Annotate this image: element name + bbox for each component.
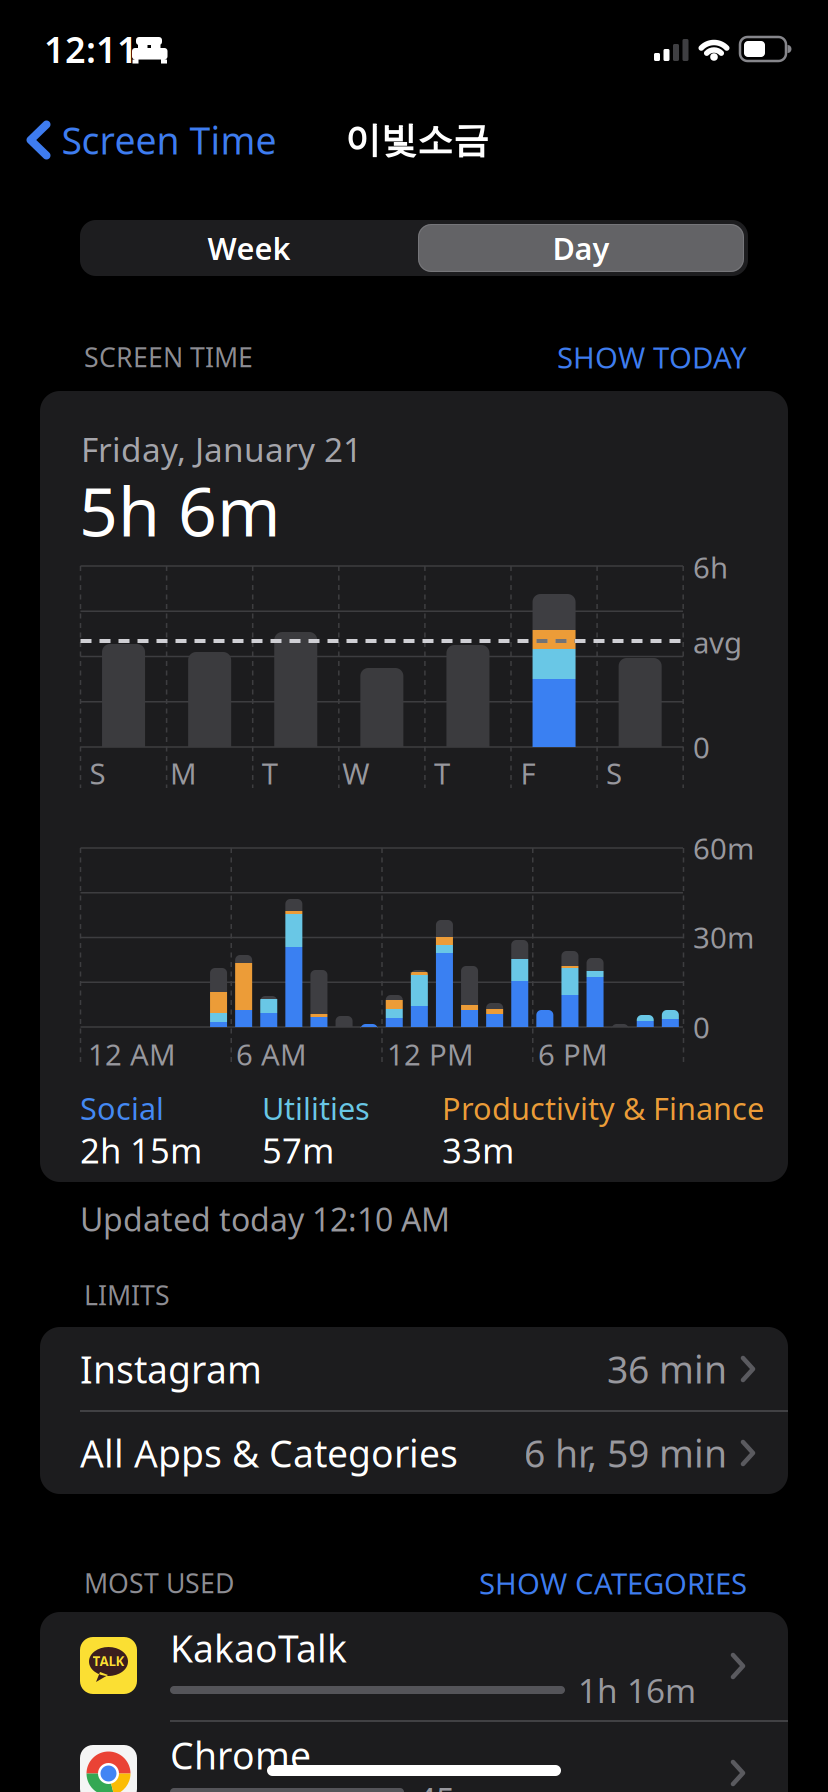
staticText: 6 PM [538,1034,608,1073]
staticText: SHOW TODAY [557,337,747,376]
staticText: Productivity & Finance [442,1088,764,1128]
button[interactable]: Chrome [40,1745,788,1792]
staticText: All Apps & Categories [80,1428,458,1478]
staticText: F [520,753,535,792]
staticText: 6 AM [236,1034,307,1073]
staticText: SCREEN TIME [84,339,253,375]
staticText: 5h 6m [79,465,281,555]
button[interactable]: SHOW TODAY [347,335,747,379]
staticText: 12 AM [88,1034,176,1073]
staticText: S [606,753,622,792]
staticText: 33m [442,1127,514,1173]
staticText: Day [552,228,609,268]
staticText: Utilities [262,1088,370,1128]
staticText: Screen Time [61,115,276,165]
staticText: 45m [417,1777,486,1792]
staticText: KakaoTalk [170,1623,347,1673]
staticText: W [342,753,369,792]
button[interactable]: TALK [40,1623,788,1709]
button[interactable]: All Apps & Categories [40,1411,788,1495]
staticText: 2h 15m [80,1127,202,1173]
staticText: Updated today 12:10 AM [80,1198,450,1240]
staticText: TALK [92,1652,124,1670]
staticText: Friday, January 21 [81,427,362,471]
staticText: Chrome [170,1730,311,1780]
staticText: Instagram [80,1344,262,1394]
staticText: avg [693,622,742,661]
staticText: 36 min [607,1344,727,1394]
button[interactable]: SHOW CATEGORIES [347,1561,747,1605]
staticText: 0 [693,1007,710,1046]
button[interactable]: Day [418,224,744,272]
button[interactable]: Instagram [40,1327,788,1411]
staticText: 60m [693,828,754,867]
staticText: 12:11 [44,25,138,73]
staticText: T [434,753,450,792]
staticText: S [89,753,105,792]
staticText: 1h 16m [578,1668,696,1712]
staticText: M [170,753,197,792]
staticText: Week [207,228,290,268]
staticText: 이빛소금 [345,118,489,162]
staticText: 30m [693,917,754,956]
staticText: SHOW CATEGORIES [479,1563,747,1602]
staticText: LIMITS [84,1277,170,1313]
staticText: T [262,753,278,792]
button[interactable]: Screen Time [27,115,276,165]
button[interactable]: Week [82,220,416,276]
staticText: 12 PM [387,1034,474,1073]
staticText: Social [80,1088,164,1128]
staticText: 6h [693,547,728,586]
staticText: MOST USED [84,1565,234,1601]
staticText: 57m [262,1127,334,1173]
staticText: 0 [693,727,710,766]
staticText: 6 hr, 59 min [524,1428,727,1478]
